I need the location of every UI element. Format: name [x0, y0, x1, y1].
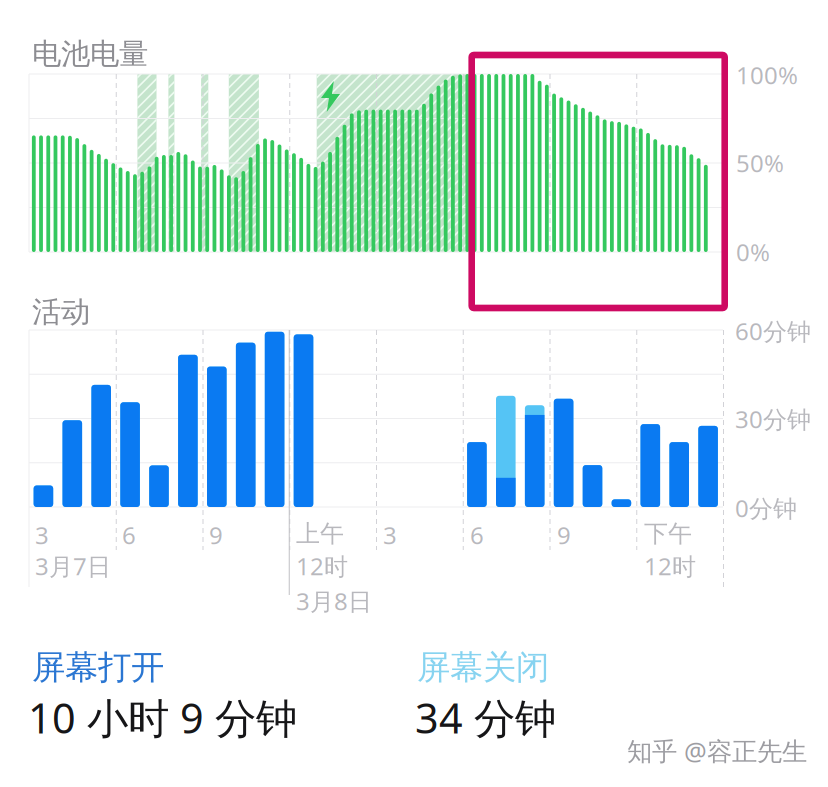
staticText: 30分钟: [735, 403, 811, 435]
staticText: 6: [470, 519, 484, 551]
staticText: 34 分钟: [415, 690, 556, 745]
staticText: 10 小时 9 分钟: [28, 690, 297, 745]
staticText: 6: [122, 519, 136, 551]
staticText: 3: [383, 519, 397, 551]
staticText: 100%: [736, 59, 798, 91]
staticText: 屏幕打开: [32, 647, 164, 688]
staticText: 电池电量: [32, 36, 148, 72]
staticText: 12时: [296, 550, 348, 582]
staticText: 3月8日: [296, 585, 372, 617]
staticText: 3月7日: [35, 550, 111, 582]
staticText: 12时: [644, 550, 696, 582]
staticText: 50%: [736, 147, 784, 179]
staticText: 下午: [644, 519, 692, 548]
staticText: 活动: [32, 294, 90, 330]
staticText: 知乎 @容正先生: [627, 734, 807, 768]
staticText: 3: [35, 519, 49, 551]
staticText: 9: [557, 519, 571, 551]
staticText: 0分钟: [735, 492, 797, 524]
staticText: 屏幕关闭: [417, 647, 549, 688]
staticText: 上午: [296, 519, 344, 548]
staticText: 60分钟: [735, 315, 811, 347]
staticText: 0%: [736, 236, 770, 268]
staticText: 9: [209, 519, 223, 551]
